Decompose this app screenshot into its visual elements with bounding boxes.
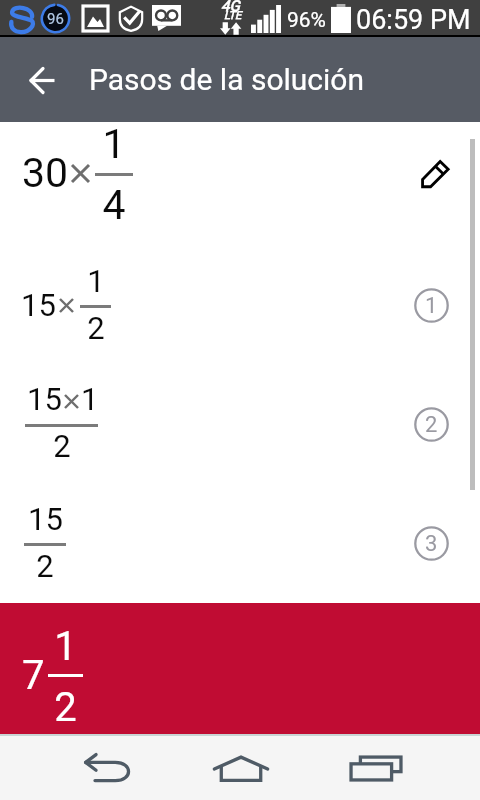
staticText: 1: [81, 381, 99, 417]
button[interactable]: Home: [201, 743, 280, 793]
staticText: 15: [27, 381, 62, 417]
staticText: 3: [425, 531, 438, 557]
staticText: 2: [87, 310, 105, 346]
button[interactable]: 2: [414, 407, 449, 442]
staticText: 7: [22, 652, 45, 699]
button[interactable]: Edit: [414, 151, 458, 195]
staticText: 2: [425, 412, 438, 438]
button[interactable]: 30: [0, 122, 480, 241]
staticText: 1: [102, 120, 126, 168]
staticText: 15: [28, 501, 63, 537]
button[interactable]: Back: [70, 743, 146, 793]
button[interactable]: 1: [414, 288, 449, 323]
button[interactable]: Recent apps: [338, 744, 414, 792]
staticText: 96: [47, 10, 64, 28]
staticText: 06:59 PM: [356, 4, 471, 36]
staticText: 2: [36, 548, 54, 584]
staticText: 1: [54, 623, 77, 670]
button[interactable]: 3: [414, 526, 449, 561]
button[interactable]: 7: [0, 603, 480, 736]
staticText: LTE: [224, 9, 242, 22]
staticText: 15: [21, 287, 56, 323]
staticText: 1: [425, 293, 438, 319]
staticText: 1: [87, 263, 105, 299]
staticText: 96%: [287, 8, 326, 33]
staticText: Pasos de la solución: [89, 62, 365, 97]
staticText: 30: [22, 149, 69, 197]
staticText: 2: [54, 684, 77, 731]
button[interactable]: Back: [18, 56, 66, 104]
staticText: 4G: [221, 0, 240, 15]
staticText: 4: [102, 181, 126, 229]
staticText: 2: [53, 428, 71, 464]
